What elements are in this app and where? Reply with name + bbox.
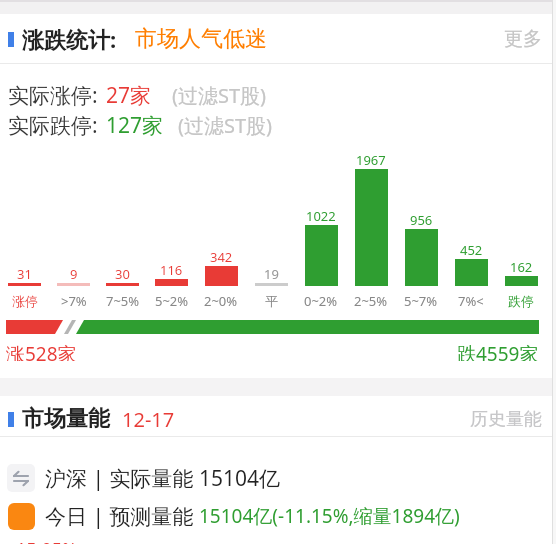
button[interactable]: 更多 [504, 27, 542, 51]
staticText: 15104亿(-11.15%,缩量1894亿) [199, 503, 460, 529]
staticText: 12-17 [122, 406, 175, 433]
staticText: 实际跌停: [8, 111, 98, 139]
staticText: 跌停 [508, 293, 534, 309]
staticText: 30 [115, 265, 130, 281]
staticText: 9 [70, 265, 78, 281]
staticText: 5~2% [155, 292, 189, 310]
staticText: 7~5% [106, 292, 140, 310]
button[interactable]: 历史量能 [470, 408, 542, 431]
staticText: 127家 [106, 111, 164, 139]
staticText: 31 [17, 265, 32, 281]
button[interactable]: 今日 | 预测量能 [0, 502, 556, 530]
button[interactable]: 沪深 | 实际量能 15104亿 [0, 464, 556, 492]
staticText: 162 [510, 258, 533, 274]
staticText: 沪深 | 实际量能 15104亿 [45, 464, 281, 492]
staticText: 5~7% [404, 292, 438, 310]
staticText: 实际涨停: [8, 81, 98, 109]
staticText: 涨528家 [6, 341, 77, 361]
staticText: 平 [265, 293, 278, 309]
staticText: 0~2% [304, 292, 338, 310]
staticText: 7%< [458, 292, 484, 310]
staticText: 涨跌统计: [22, 24, 117, 54]
staticText: >7% [61, 292, 87, 310]
staticText: 19 [264, 265, 279, 281]
staticText: 1967 [356, 151, 386, 167]
staticText: 27家 [106, 81, 152, 109]
staticText: 116 [160, 261, 183, 277]
staticText: 市场量能 [22, 405, 110, 433]
staticText: 452 [460, 241, 483, 257]
staticText: 956 [410, 211, 433, 227]
staticText: 涨停 [12, 293, 38, 309]
staticText: 342 [210, 248, 233, 264]
staticText: (过滤ST股) [178, 112, 273, 139]
staticText: 2~5% [354, 292, 388, 310]
staticText: 15.05% [16, 537, 77, 544]
staticText: 跌4559家 [457, 341, 539, 361]
staticText: 2~0% [204, 292, 238, 310]
staticText: 今日 | 预测量能 [45, 502, 199, 530]
staticText: 1022 [306, 207, 336, 223]
staticText: (过滤ST股) [172, 82, 267, 109]
staticText: 市场人气低迷 [135, 25, 267, 53]
